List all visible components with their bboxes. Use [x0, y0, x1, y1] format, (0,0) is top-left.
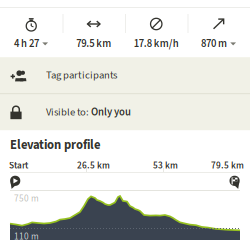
button[interactable]: 870 m [187, 8, 250, 57]
staticText: 4 h 27 [14, 36, 39, 51]
staticText: Elevation profile [10, 136, 101, 154]
button[interactable]: Start of route [10, 174, 21, 189]
button[interactable]: Tag participants [0, 57, 250, 93]
staticText: 17.8 km/h [134, 36, 179, 51]
staticText: 110 m [14, 230, 39, 243]
staticText: 750 m [14, 192, 39, 205]
staticText: Tag participants [46, 68, 117, 83]
staticText: 79.5 km [211, 159, 244, 172]
staticText: 870 m [201, 36, 227, 51]
staticText: Visible to: [46, 105, 91, 120]
button[interactable]: Visible to: [0, 94, 250, 130]
button[interactable]: 17.8 km/h [125, 8, 187, 57]
staticText: 26.5 km [77, 159, 110, 172]
staticText: 79.5 km [76, 36, 111, 51]
staticText: Start [9, 159, 28, 172]
staticText: Only you [91, 105, 131, 120]
button[interactable]: 4 h 27 [0, 8, 62, 57]
button[interactable]: 79.5 km [62, 8, 125, 57]
button[interactable]: Finish of route [229, 174, 240, 189]
staticText: 53 km [153, 159, 178, 172]
